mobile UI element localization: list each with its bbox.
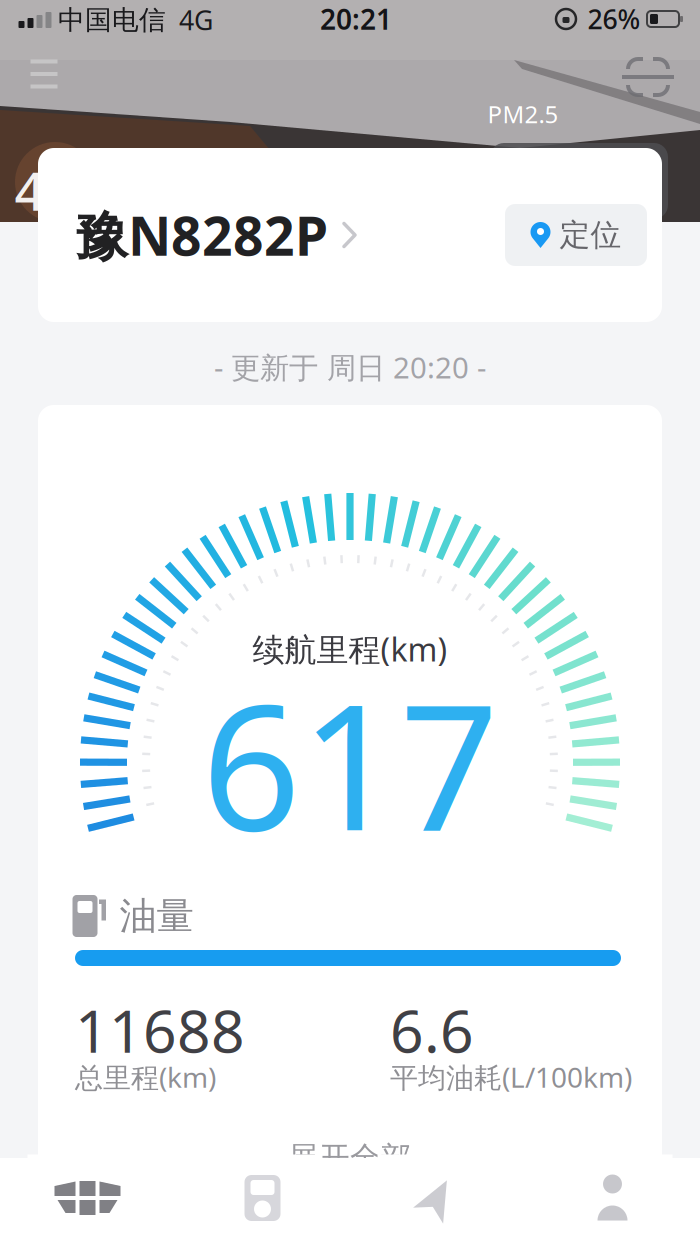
- button[interactable]: 定位: [505, 204, 647, 266]
- button[interactable]: 控制: [202, 1154, 322, 1241]
- button[interactable]: Scan: [626, 57, 670, 97]
- staticText: 4: [14, 155, 45, 225]
- button[interactable]: 我的: [552, 1154, 672, 1241]
- staticText: PM2.5: [487, 98, 558, 130]
- staticText: 617: [201, 648, 498, 878]
- button[interactable]: 展开全部: [288, 1139, 412, 1177]
- staticText: - 更新于 周日 20:20 -: [214, 347, 486, 386]
- staticText: 4G: [179, 2, 213, 38]
- staticText: 11688: [75, 991, 245, 1069]
- staticText: 总里程(km): [75, 1058, 216, 1096]
- staticText: 续航里程(km): [252, 628, 447, 670]
- button[interactable]: 豫N8282P: [38, 148, 662, 322]
- staticText: 豫N8282P: [75, 200, 328, 270]
- staticText: 20:21: [320, 0, 392, 38]
- staticText: 平均油耗(L/100km): [390, 1058, 632, 1096]
- button[interactable]: 车辆: [27, 1154, 147, 1241]
- staticText: 展开全部: [288, 1139, 412, 1177]
- staticText: 油量: [119, 893, 193, 939]
- staticText: 定位: [559, 216, 621, 254]
- staticText: 26%: [587, 1, 640, 37]
- staticText: 6.6: [390, 991, 474, 1069]
- button[interactable]: Menu: [30, 59, 57, 88]
- staticText: 中国电信: [58, 4, 166, 36]
- button[interactable]: 位置: [377, 1154, 497, 1241]
